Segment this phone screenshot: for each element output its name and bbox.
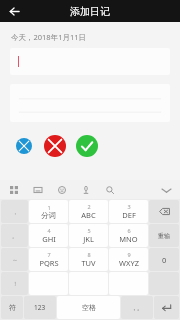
staticText: DEF bbox=[122, 210, 136, 220]
staticText: GHI bbox=[42, 234, 56, 244]
staticText: 分词 bbox=[41, 211, 56, 220]
button[interactable]: Search bbox=[103, 183, 116, 196]
button[interactable]: Enter bbox=[154, 296, 179, 319]
button[interactable]: Voice bbox=[79, 183, 92, 196]
button[interactable]: Close small bbox=[16, 138, 32, 154]
button[interactable]: 6 bbox=[109, 224, 148, 247]
staticText: ，。 bbox=[131, 304, 143, 312]
staticText: 4 bbox=[47, 227, 51, 234]
staticText: 1 bbox=[47, 204, 51, 211]
staticText: ， bbox=[12, 208, 18, 216]
staticText: 今天，2018年1月11日 bbox=[11, 32, 87, 42]
button[interactable]: ，。 bbox=[121, 296, 153, 319]
staticText: 。 bbox=[12, 232, 18, 240]
staticText: ABC bbox=[81, 210, 96, 220]
staticText: 0 bbox=[162, 255, 167, 265]
staticText: 2 bbox=[87, 203, 91, 210]
button[interactable]: Back bbox=[4, 1, 24, 21]
button[interactable]: 3 bbox=[109, 200, 148, 223]
staticText: 符 bbox=[9, 303, 16, 312]
button[interactable]: Hide keyboard bbox=[159, 183, 173, 197]
staticText: 空格 bbox=[82, 303, 96, 312]
staticText: 重输 bbox=[158, 232, 170, 240]
staticText: 添加日记 bbox=[70, 5, 110, 18]
staticText: 5 bbox=[87, 227, 91, 234]
button[interactable]: 9 bbox=[109, 248, 148, 271]
button[interactable]: Apps bbox=[7, 183, 20, 196]
button[interactable]: 1 bbox=[29, 200, 68, 223]
button[interactable]: 5 bbox=[69, 224, 108, 247]
button[interactable]: 8 bbox=[69, 248, 108, 271]
staticText: 9 bbox=[127, 251, 131, 258]
staticText: PQRS bbox=[39, 258, 59, 268]
button[interactable]: 2 bbox=[69, 200, 108, 223]
button[interactable]: 空格 bbox=[57, 296, 120, 319]
button[interactable]: 123 bbox=[24, 296, 56, 319]
staticText: 123 bbox=[34, 303, 46, 312]
button[interactable]: 7 bbox=[29, 248, 68, 271]
staticText: TUV bbox=[81, 258, 96, 268]
button[interactable]: Emoji bbox=[55, 183, 68, 196]
staticText: 8 bbox=[87, 251, 91, 258]
staticText: 3 bbox=[127, 203, 131, 210]
button[interactable]: 符 bbox=[1, 296, 23, 319]
button[interactable]: 0 bbox=[149, 248, 179, 271]
staticText: 7 bbox=[47, 251, 51, 258]
button[interactable] bbox=[10, 48, 170, 75]
button[interactable]: Keyboard bbox=[31, 183, 44, 196]
button[interactable]: 4 bbox=[29, 224, 68, 247]
staticText: ～ bbox=[12, 256, 18, 264]
staticText: JKL bbox=[83, 234, 94, 244]
button[interactable]: Confirm bbox=[76, 135, 98, 157]
staticText: 6 bbox=[127, 227, 131, 234]
staticText: WXYZ bbox=[119, 258, 139, 268]
button[interactable]: Backspace bbox=[149, 200, 179, 223]
staticText: ！ bbox=[12, 280, 18, 288]
staticText: MNO bbox=[119, 234, 138, 244]
button[interactable]: Cancel bbox=[44, 135, 66, 157]
button[interactable]: 重输 bbox=[149, 224, 179, 247]
